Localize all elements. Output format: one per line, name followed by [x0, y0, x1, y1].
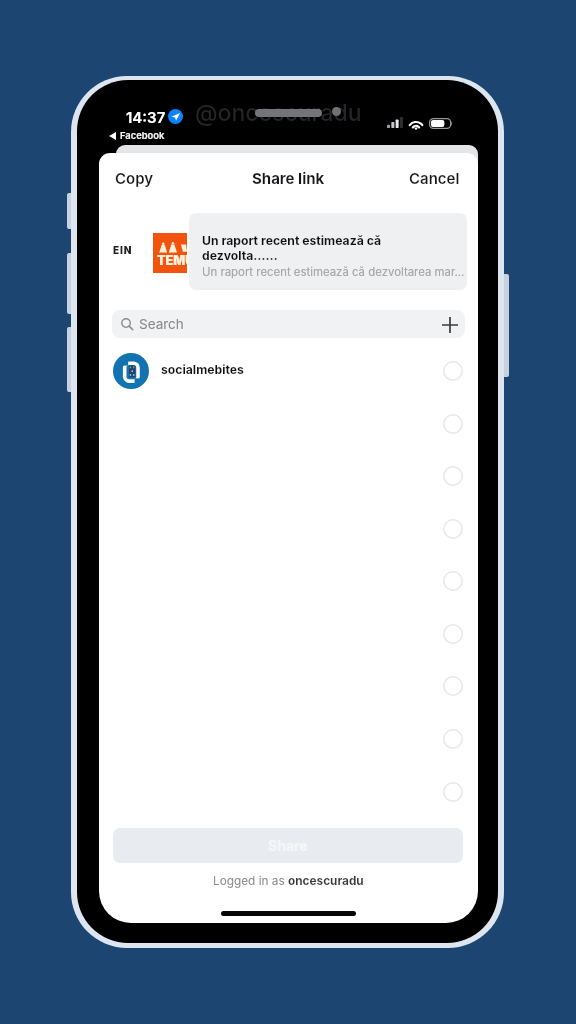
button[interactable]: Add	[441, 316, 459, 334]
staticText: Share	[268, 837, 308, 854]
staticText: Search	[139, 316, 184, 332]
staticText: EIN	[113, 244, 133, 256]
staticText: Copy	[115, 169, 154, 187]
button[interactable]: Cancel	[409, 169, 460, 187]
button[interactable]: Copy	[115, 169, 154, 187]
staticText: Un raport recent estimează că dezvoltare…	[202, 265, 465, 279]
staticText: Cancel	[409, 169, 460, 187]
button[interactable]: Search	[112, 310, 465, 338]
staticText: Logged in as	[213, 874, 288, 888]
staticText: 14:37	[126, 108, 166, 126]
staticText: socialmebites	[161, 362, 244, 377]
staticText: TEMU	[157, 253, 191, 268]
staticText: Share link	[252, 169, 325, 187]
button[interactable]: Share link	[252, 169, 325, 187]
staticText: Facebook	[120, 130, 165, 141]
staticText: Un raport recent estimează că dezvolta……	[202, 233, 382, 263]
staticText: oncescuradu	[288, 874, 364, 888]
button[interactable]: socialmebites	[99, 348, 478, 394]
staticText: @oncescuradu	[195, 101, 362, 127]
